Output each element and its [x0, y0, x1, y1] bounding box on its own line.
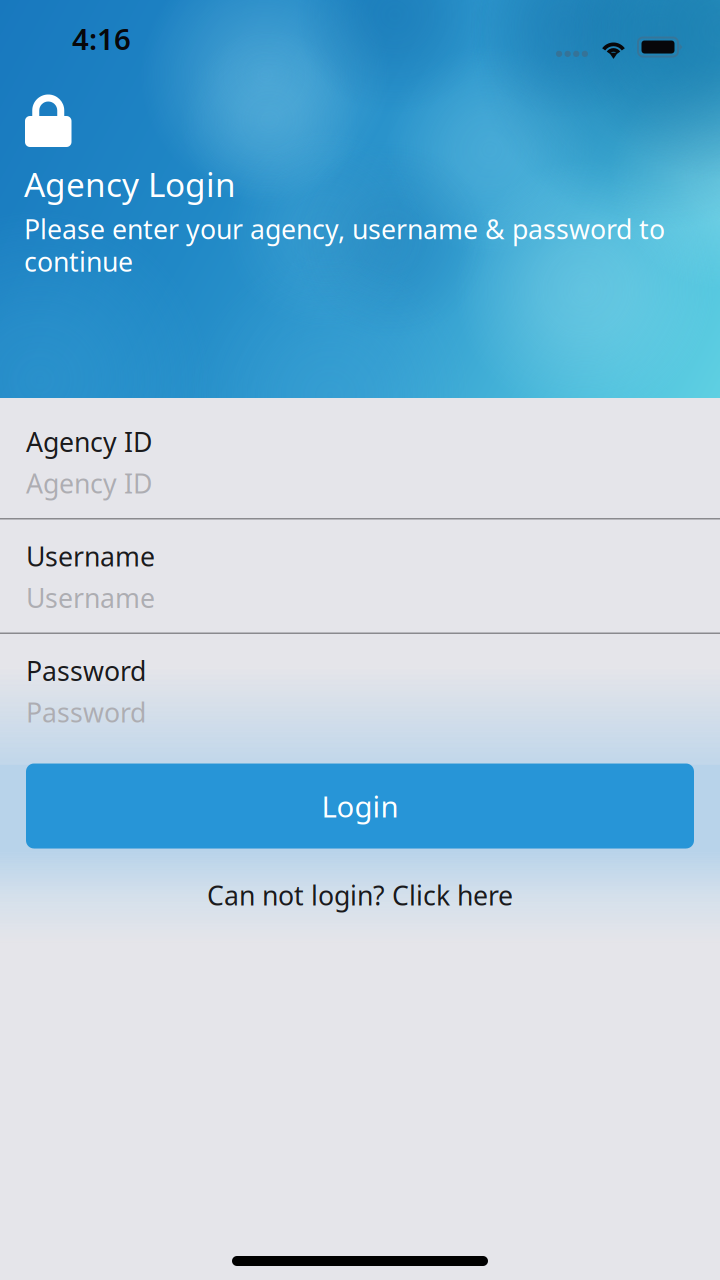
staticText: Can not login? Click here	[207, 877, 513, 913]
staticText: Password	[26, 694, 146, 730]
staticText: Agency ID	[26, 424, 152, 459]
staticText: Username	[26, 538, 155, 574]
staticText: Please enter your agency, username & pas…	[24, 211, 665, 279]
button[interactable]: Agency ID	[0, 398, 720, 519]
staticText: Login	[321, 786, 398, 825]
staticText: Password	[26, 653, 146, 688]
button[interactable]: Username	[0, 519, 720, 634]
staticText: Username	[26, 580, 155, 615]
staticText: Agency Login	[24, 162, 236, 206]
staticText: Agency ID	[26, 465, 152, 501]
button[interactable]: Login	[26, 763, 694, 848]
staticText: 4:16	[72, 19, 131, 58]
button[interactable]: Password	[0, 634, 720, 748]
button[interactable]: Can not login? Click here	[187, 865, 533, 925]
